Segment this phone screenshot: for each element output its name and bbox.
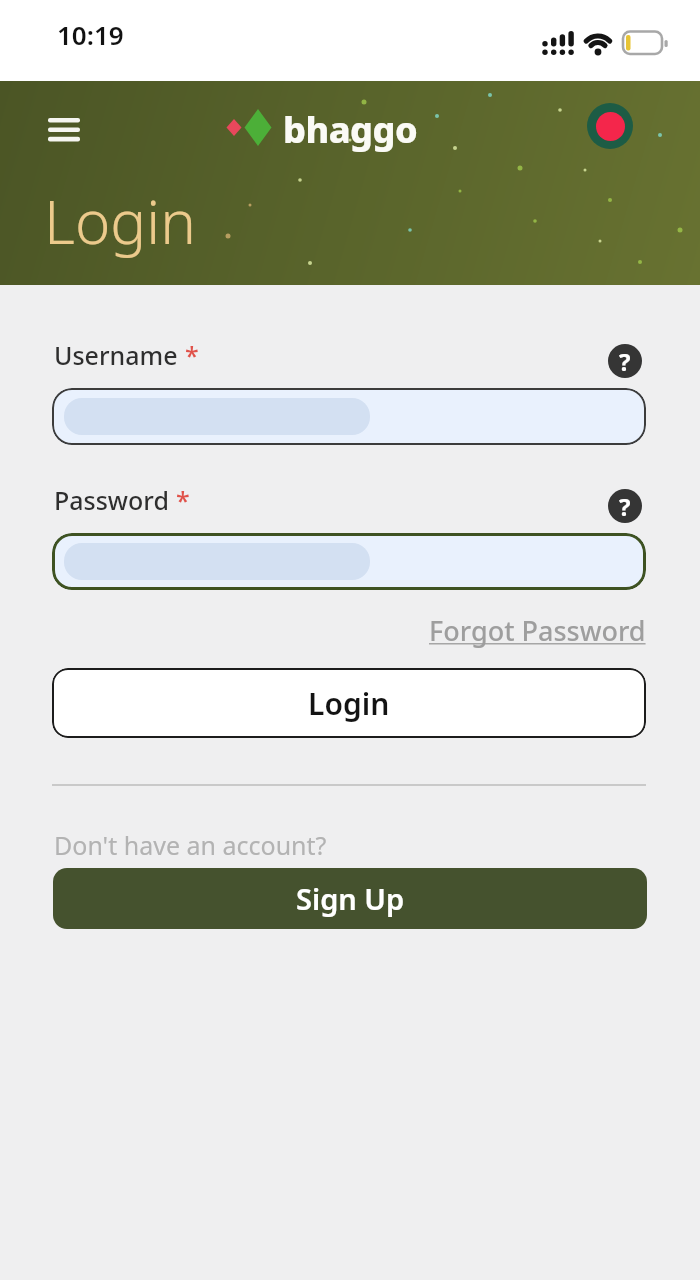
staticText: ? — [619, 490, 631, 523]
staticText: * — [185, 338, 199, 372]
button[interactable]: ? — [608, 489, 642, 523]
staticText: Password — [54, 483, 169, 517]
staticText: Login — [308, 683, 390, 724]
staticText: Username — [54, 338, 178, 372]
button[interactable] — [52, 533, 646, 590]
button[interactable] — [52, 388, 646, 445]
staticText: Don't have an account? — [54, 828, 327, 862]
staticText: ? — [619, 345, 631, 378]
button[interactable] — [587, 103, 633, 149]
staticText: * — [176, 483, 190, 517]
staticText: Login — [44, 180, 196, 262]
button[interactable]: Sign Up — [53, 868, 647, 929]
button[interactable]: ? — [608, 344, 642, 378]
staticText: Forgot Password — [429, 612, 646, 649]
staticText: bhaggo — [283, 105, 418, 154]
button[interactable]: Login — [52, 668, 646, 738]
staticText: 10:19 — [57, 17, 124, 52]
button[interactable]: Forgot Password — [429, 612, 646, 649]
staticText: Sign Up — [296, 879, 405, 918]
button[interactable] — [40, 110, 88, 148]
